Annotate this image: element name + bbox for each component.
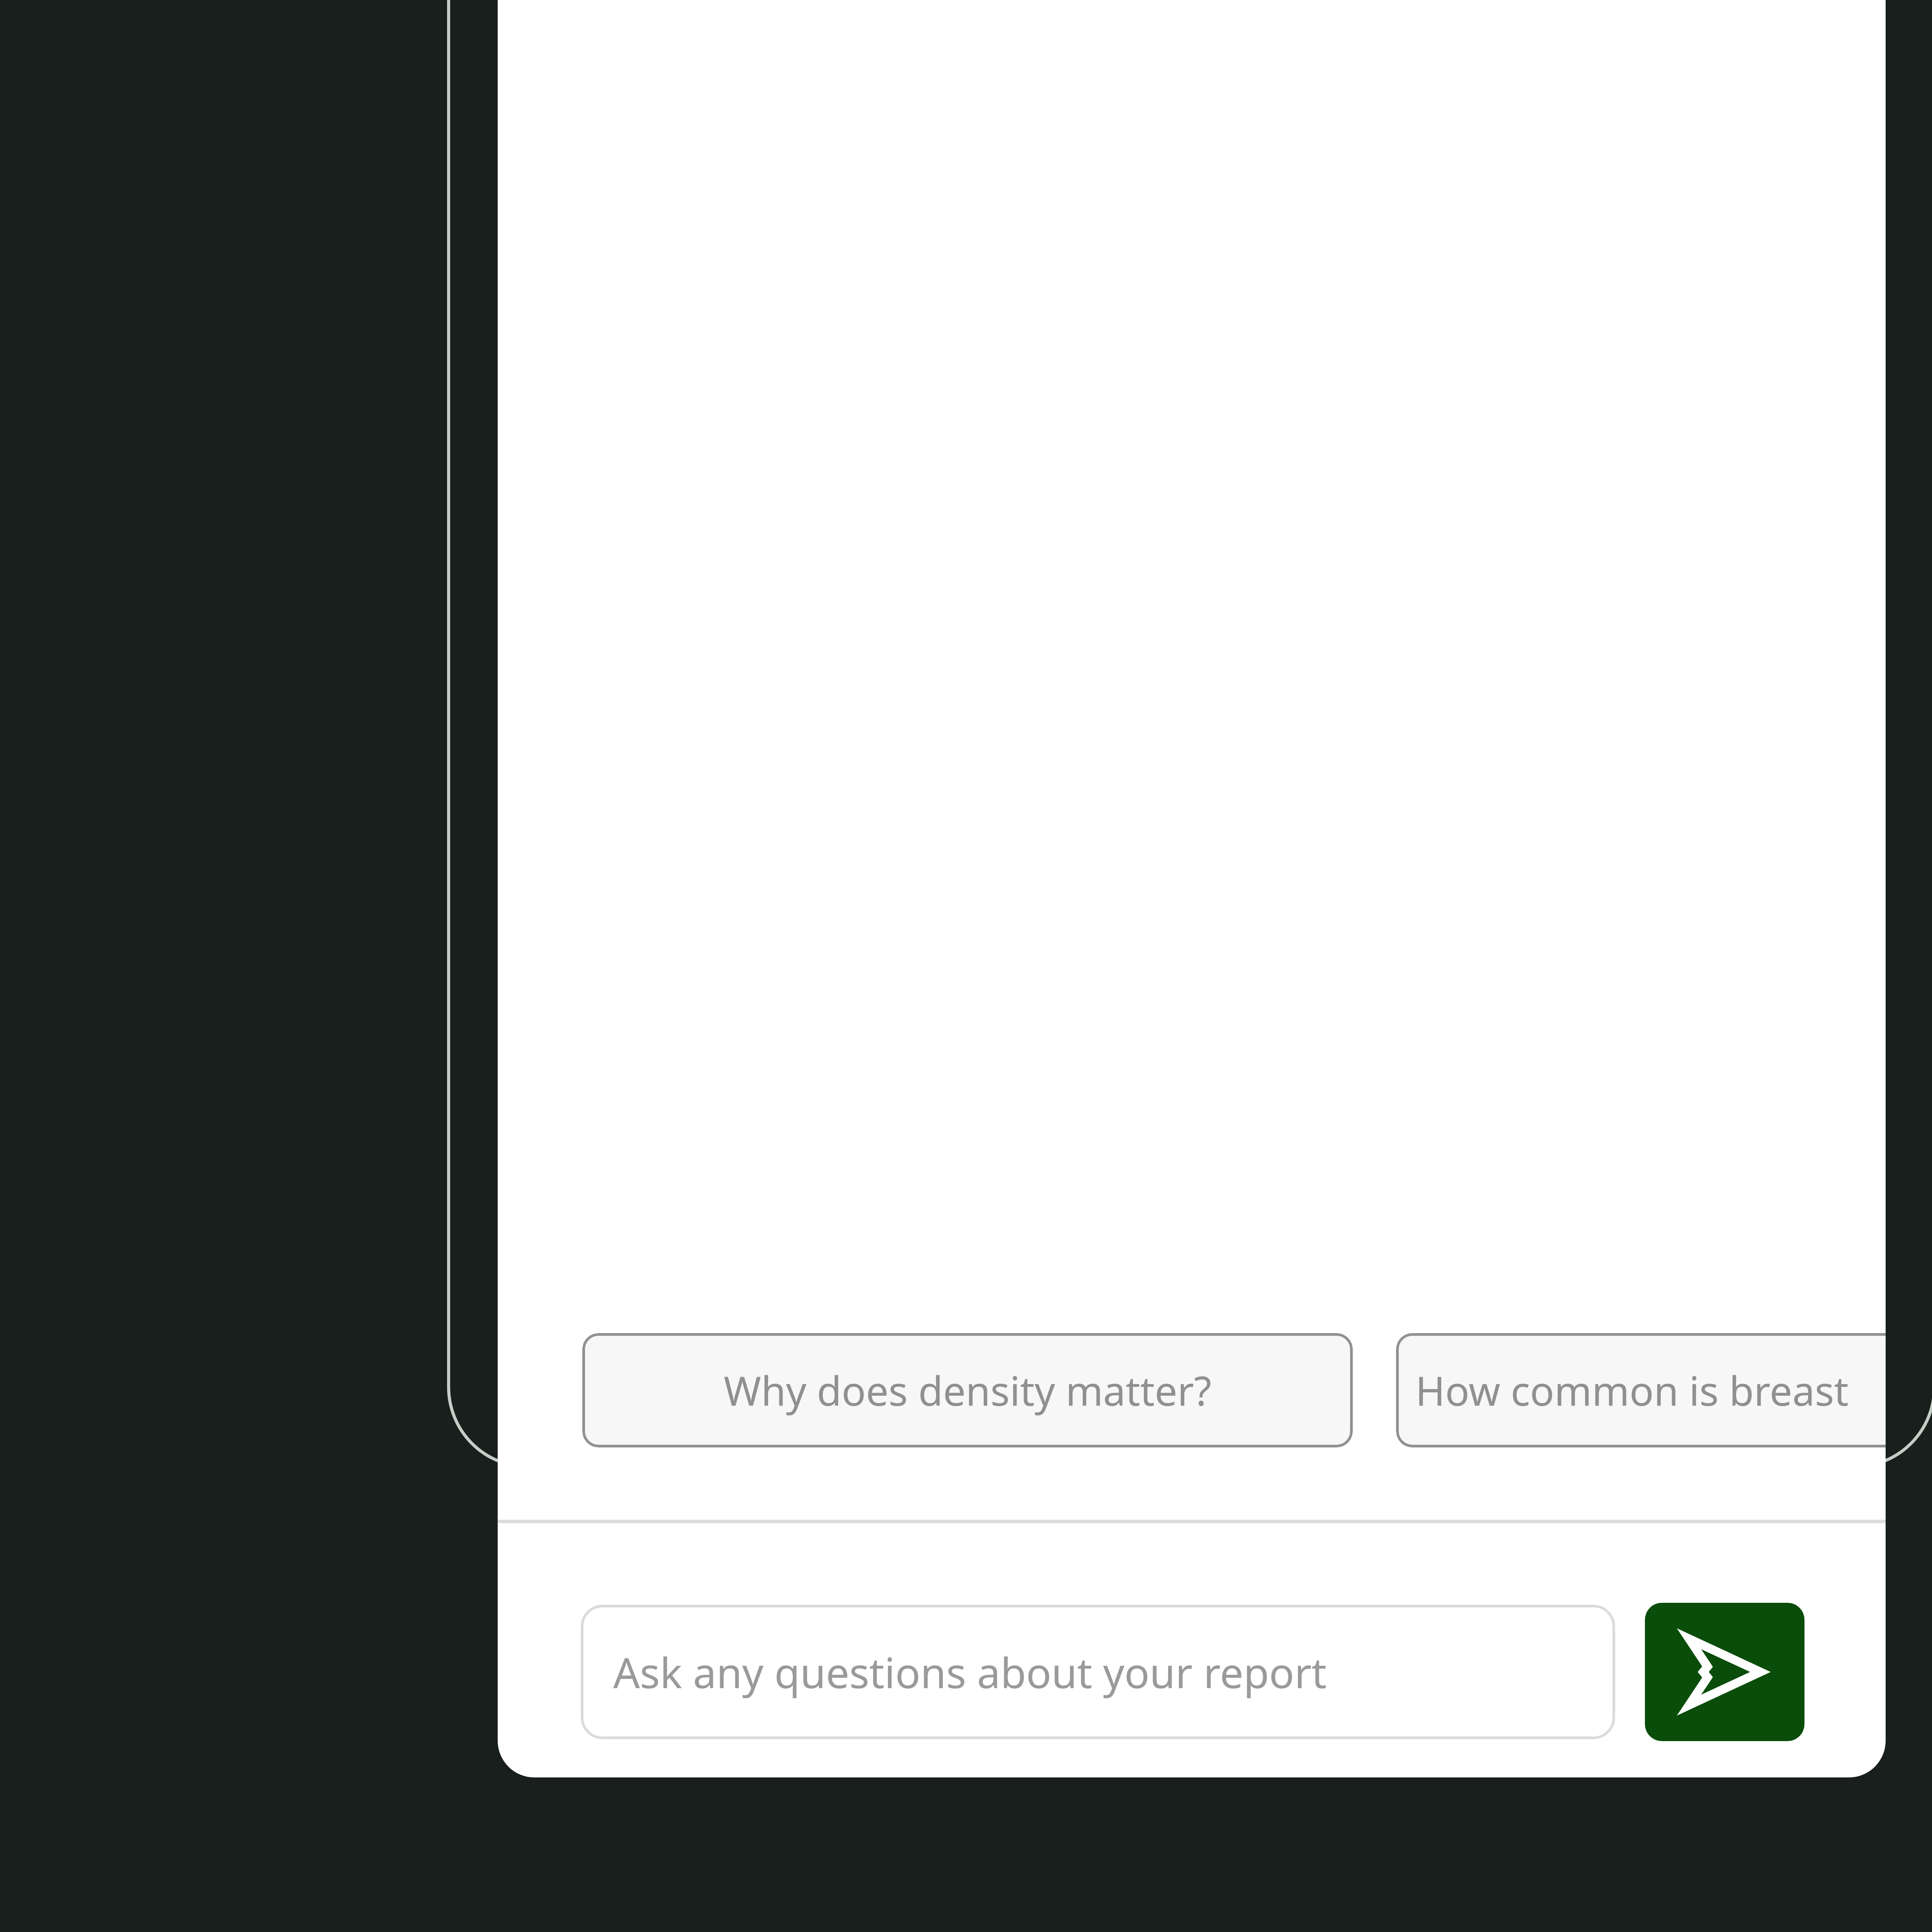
staticText: Ask any questions about your report (613, 1644, 1327, 1701)
button[interactable]: Send (1645, 1603, 1804, 1741)
button[interactable]: How common is breast density? (1396, 1333, 1886, 1447)
staticText: How common is breast density? (1415, 1363, 1886, 1418)
button[interactable]: Why does density matter? (582, 1333, 1353, 1447)
button[interactable]: Ask any questions about your report (581, 1605, 1615, 1739)
staticText: Why does density matter? (724, 1363, 1212, 1418)
